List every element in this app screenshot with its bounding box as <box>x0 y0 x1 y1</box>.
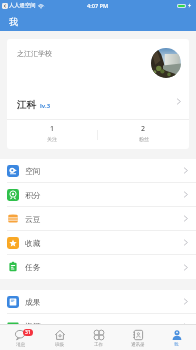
button[interactable]: 之江汇学校 <box>7 39 189 119</box>
staticText: 空间 <box>25 166 41 176</box>
staticText: 通讯录 <box>131 342 145 348</box>
staticText: 资源 <box>25 321 41 331</box>
button[interactable]: 成果 <box>0 290 196 313</box>
staticText: 云豆 <box>25 214 41 224</box>
button[interactable]: 资源 <box>0 314 196 338</box>
staticText: 4:07 PM <box>87 2 109 10</box>
button[interactable]: 2 <box>98 120 189 149</box>
staticText: 班级 <box>55 342 64 348</box>
staticText: 粉丝 <box>139 136 149 142</box>
button[interactable]: 空间 <box>0 159 196 182</box>
staticText: lv.3 <box>40 102 51 110</box>
staticText: 成果 <box>25 297 41 307</box>
button[interactable]: 1 <box>7 120 97 149</box>
button[interactable]: 积分 <box>0 183 196 206</box>
staticText: 积分 <box>25 190 41 200</box>
staticText: 收藏 <box>25 238 41 248</box>
staticText: 江科 <box>17 99 36 111</box>
staticText: 我 <box>174 342 179 348</box>
staticText: 关注 <box>47 136 57 142</box>
button[interactable]: 通讯录 <box>118 325 157 350</box>
button[interactable]: 工作 <box>79 325 118 350</box>
button[interactable]: 消息 <box>0 325 40 350</box>
staticText: 任务 <box>25 262 41 272</box>
button[interactable]: 班级 <box>40 325 79 350</box>
staticText: 之江汇学校 <box>17 49 52 58</box>
staticText: 31 <box>25 329 31 336</box>
staticText: 2 <box>141 124 146 134</box>
button[interactable]: 我 <box>157 325 196 350</box>
staticText: 人人通空间 <box>9 2 36 9</box>
button[interactable]: 云豆 <box>0 207 196 230</box>
staticText: 消息 <box>16 342 25 348</box>
button[interactable]: 任务 <box>0 255 196 279</box>
staticText: 1 <box>50 124 55 134</box>
staticText: 我 <box>9 16 18 27</box>
button[interactable]: 收藏 <box>0 231 196 254</box>
staticText: 工作 <box>94 342 103 348</box>
